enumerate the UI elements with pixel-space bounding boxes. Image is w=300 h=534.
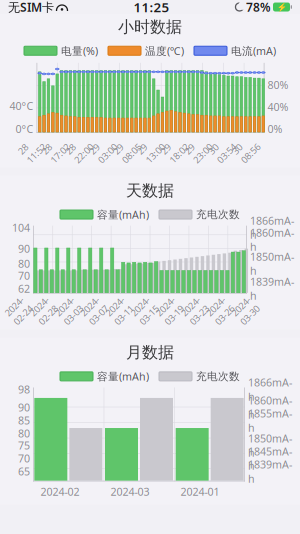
staticText: 无SIM卡: [8, 0, 54, 15]
staticText: 电量(%): [61, 44, 98, 58]
staticText: 80: [18, 426, 30, 441]
staticText: 28 17:02: [44, 136, 67, 161]
staticText: 30 08:56: [235, 136, 258, 161]
staticText: 1860mAh: [248, 393, 292, 422]
staticText: 容量(mAh): [97, 369, 149, 383]
staticText: 78%: [246, 0, 271, 15]
staticText: 1839mAh: [250, 274, 294, 303]
staticText: 1866mAh: [250, 213, 294, 242]
staticText: 2024-02-28: [32, 298, 55, 323]
staticText: ⚡: [276, 2, 286, 11]
staticText: 0%: [267, 122, 282, 136]
staticText: 温度(℃): [145, 44, 184, 58]
staticText: 98: [18, 382, 30, 397]
staticText: 小时数据: [118, 17, 182, 37]
staticText: 28 22:00: [68, 136, 91, 161]
staticText: 80: [18, 257, 30, 271]
staticText: 2024-03-07: [83, 298, 106, 323]
staticText: 2024-02-24: [7, 298, 30, 323]
staticText: 2024-03-15: [133, 298, 156, 323]
staticText: 104: [12, 221, 30, 235]
staticText: 充电次数: [196, 208, 240, 221]
staticText: 充电次数: [196, 370, 240, 383]
staticText: 1866mAh: [248, 375, 292, 404]
staticText: 30 03:54: [211, 136, 234, 161]
staticText: 2024-03-03: [57, 298, 80, 323]
staticText: 2024-01: [180, 484, 219, 499]
staticText: 40°C: [9, 99, 33, 113]
staticText: 65: [18, 464, 30, 479]
staticText: 2024-03-19: [158, 298, 181, 323]
staticText: 2024-03-11: [108, 298, 131, 323]
staticText: 1850mAh: [248, 431, 292, 460]
staticText: 70: [18, 451, 30, 466]
staticText: 62: [18, 282, 30, 296]
staticText: 1850mAh: [250, 249, 294, 278]
staticText: 月数据: [126, 343, 174, 362]
staticText: 90: [18, 400, 30, 415]
staticText: 11:25: [133, 0, 169, 16]
staticText: 85: [18, 413, 30, 428]
staticText: 2024-03: [110, 484, 149, 499]
staticText: 容量(mAh): [97, 207, 149, 222]
staticText: 29 08:05: [116, 136, 139, 161]
staticText: 90: [18, 242, 30, 256]
staticText: 1839mAh: [248, 457, 292, 486]
staticText: 电流(mA): [231, 44, 276, 58]
staticText: 29 18:02: [163, 136, 186, 161]
staticText: 29 13:00: [139, 136, 162, 161]
staticText: 70: [18, 269, 30, 283]
staticText: 2024-03-23: [183, 298, 206, 323]
staticText: 2024-03-26: [209, 298, 232, 323]
staticText: 1855mAh: [248, 406, 292, 435]
staticText: 天数据: [126, 181, 174, 200]
staticText: 80%: [267, 78, 288, 92]
staticText: 29 03:00: [92, 136, 115, 161]
staticText: 75: [18, 438, 30, 453]
staticText: 2024-02: [40, 484, 79, 499]
staticText: 29 23:00: [187, 136, 210, 161]
staticText: 0°C: [15, 122, 33, 136]
staticText: 40%: [267, 100, 288, 114]
staticText: 2024-03-30: [234, 298, 257, 323]
staticText: 28 11:52: [20, 136, 43, 161]
staticText: 1845mAh: [248, 444, 292, 473]
staticText: 1860mAh: [250, 225, 294, 254]
